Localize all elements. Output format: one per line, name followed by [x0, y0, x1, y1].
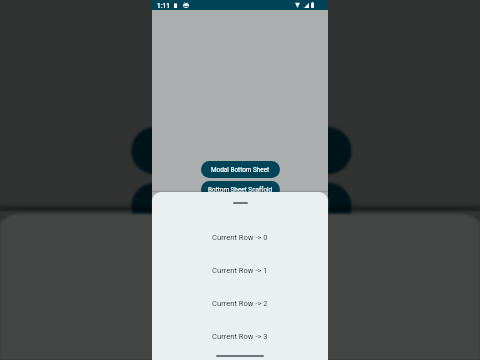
staticText: Modal Bottom Sheet	[159, 141, 324, 163]
staticText: Current Row -> 2	[212, 299, 268, 308]
staticText: Current Row -> 3	[212, 332, 268, 341]
button[interactable]: Bottom Sheet Scaffold	[201, 181, 280, 198]
staticText: Bottom Sheet Scaffold	[208, 186, 273, 194]
staticText: Bottom Sheet Scaffold	[151, 197, 332, 219]
staticText: 1:11	[157, 1, 170, 10]
button[interactable]: Current Row -> 3	[152, 320, 328, 353]
button[interactable]: Current Row -> 2	[152, 287, 328, 320]
button[interactable]: Current Row -> 1	[152, 254, 328, 287]
staticText: Current Row -> 0	[162, 328, 318, 353]
staticText: Current Row -> 0	[212, 233, 268, 242]
button[interactable]: Current Row -> 0	[152, 221, 328, 254]
button[interactable]: Modal Bottom Sheet	[201, 161, 280, 178]
staticText: Modal Bottom Sheet	[211, 166, 270, 174]
staticText: Current Row -> 1	[212, 266, 268, 275]
